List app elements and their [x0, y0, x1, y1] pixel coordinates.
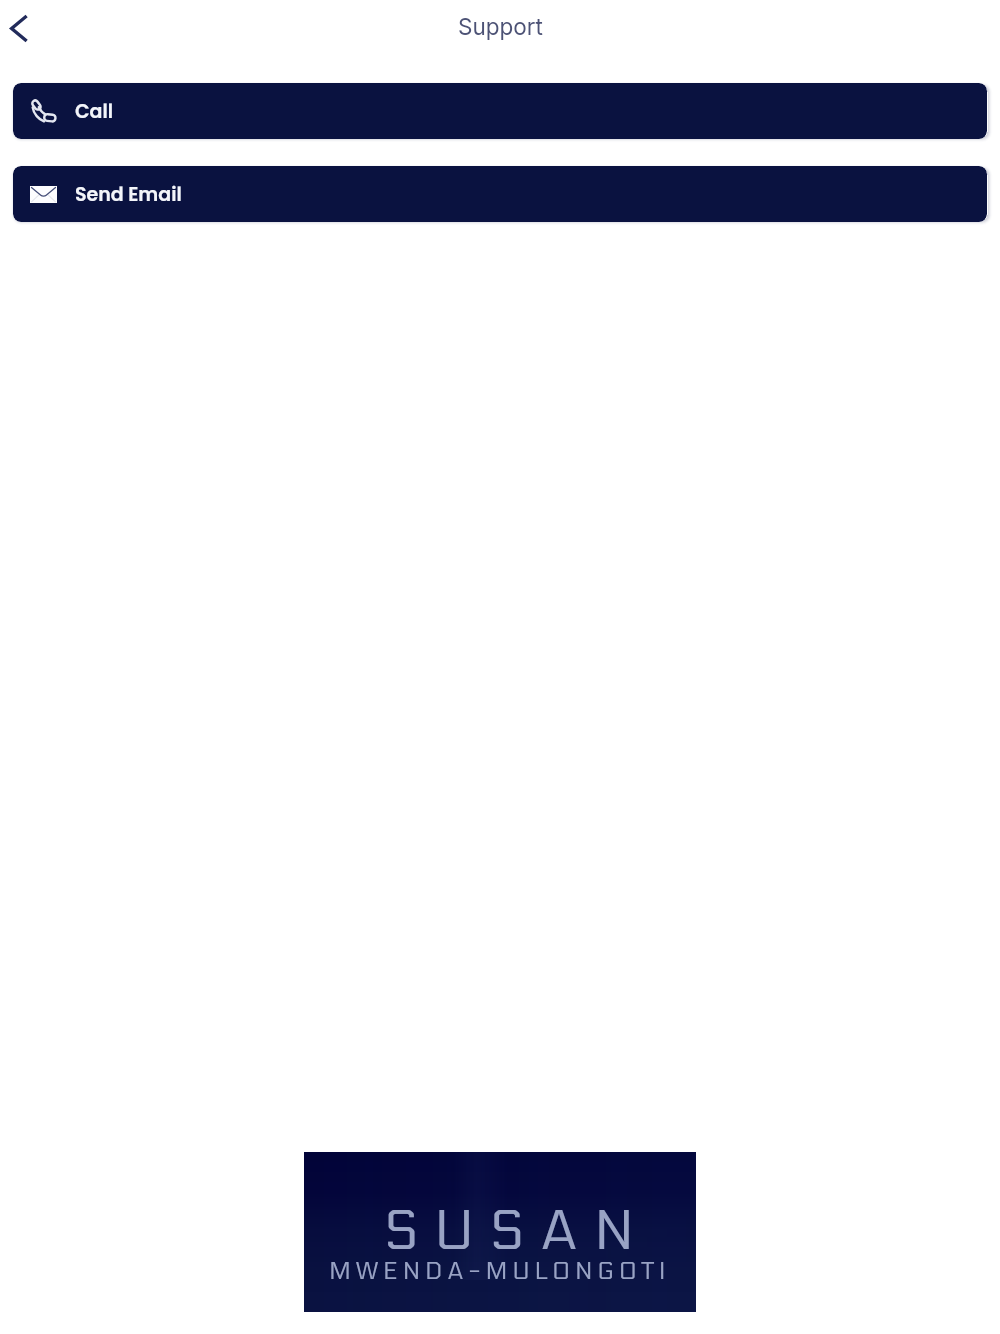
button[interactable]: Call: [13, 83, 987, 139]
staticText: Call: [75, 98, 114, 125]
staticText: Send Email: [75, 181, 182, 208]
button[interactable]: Send Email: [13, 166, 987, 222]
staticText: MWENDA-MULONGOTI: [329, 1257, 671, 1285]
button[interactable]: Back: [0, 0, 46, 55]
staticText: Support: [458, 13, 543, 40]
staticText: SUSAN: [384, 1199, 650, 1264]
